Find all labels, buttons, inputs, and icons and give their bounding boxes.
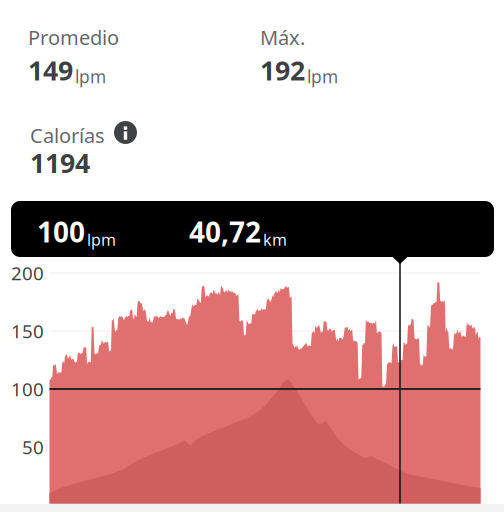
staticText: 192 [260,53,305,88]
staticText: 150 [11,319,44,343]
staticText: km [263,229,287,250]
staticText: 200 [11,261,44,285]
staticText: 50 [22,435,44,459]
staticText: 100 [11,377,44,401]
button[interactable]: 100 [11,201,494,257]
button[interactable]: Información sobre calorías [114,121,137,144]
staticText: 149 [28,53,73,88]
staticText: lpm [87,229,116,250]
staticText: lpm [307,65,338,88]
staticText: 1194 [30,145,90,180]
staticText: 100 [37,213,85,250]
staticText: Promedio [28,24,119,51]
staticText: lpm [75,65,106,88]
staticText: Máx. [260,24,305,51]
staticText: 40,72 [189,213,261,250]
staticText: Calorías [30,122,105,149]
